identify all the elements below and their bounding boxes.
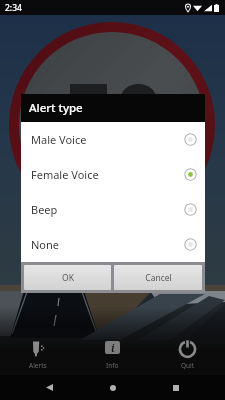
button[interactable]: i: [75, 332, 150, 375]
staticText: Cancel: [145, 272, 172, 284]
staticText: 2:34: [5, 2, 22, 14]
button[interactable]: Female Voice: [21, 157, 205, 192]
button[interactable]: OK: [24, 265, 111, 290]
button[interactable]: Male Voice: [21, 122, 205, 157]
button[interactable]: Beep: [21, 192, 205, 227]
button[interactable]: Cancel: [114, 265, 202, 290]
staticText: OK: [62, 272, 74, 284]
button[interactable]: Back: [35, 375, 63, 400]
staticText: Beep: [31, 202, 184, 217]
staticText: Quit: [181, 361, 195, 370]
button[interactable]: Home: [99, 375, 127, 400]
staticText: i: [111, 341, 115, 354]
staticText: Male Voice: [31, 132, 184, 147]
button[interactable]: Recents: [162, 375, 190, 400]
staticText: Alerts: [29, 361, 47, 370]
button[interactable]: None: [21, 227, 205, 262]
button[interactable]: Quit: [150, 332, 225, 375]
staticText: Alert type: [29, 100, 83, 116]
staticText: Info: [106, 361, 119, 370]
staticText: None: [31, 237, 184, 252]
button[interactable]: Alerts: [0, 332, 75, 375]
staticText: Female Voice: [31, 167, 184, 182]
